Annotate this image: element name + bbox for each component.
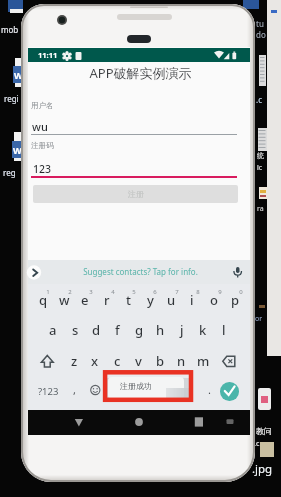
staticText: k: [199, 321, 207, 339]
staticText: 8: [196, 288, 200, 296]
staticText: u: [167, 291, 176, 309]
button[interactable]: k: [192, 316, 214, 344]
button[interactable]: t: [117, 286, 139, 314]
staticText: b: [156, 352, 165, 370]
button[interactable]: o: [203, 286, 225, 314]
button[interactable]: f: [106, 316, 128, 344]
button[interactable]: l: [213, 316, 235, 344]
staticText: ,: [73, 382, 76, 397]
button[interactable]: w: [53, 286, 75, 314]
staticText: 7: [175, 288, 179, 296]
staticText: y: [147, 291, 154, 309]
button[interactable]: u: [160, 286, 182, 314]
staticText: 0: [239, 288, 243, 296]
staticText: r: [104, 291, 110, 309]
staticText: 用户名: [31, 101, 54, 110]
staticText: tu: [256, 18, 264, 29]
button[interactable]: d: [85, 316, 107, 344]
staticText: .: [208, 382, 211, 397]
staticText: 注册成功: [120, 381, 152, 391]
button[interactable]: [217, 349, 242, 374]
button[interactable]: [220, 382, 239, 401]
staticText: lc: [257, 163, 263, 173]
staticText: 统: [257, 151, 264, 160]
button[interactable]: [31, 161, 237, 177]
button[interactable]: a: [42, 316, 64, 344]
staticText: o: [210, 291, 218, 309]
button[interactable]: y: [139, 286, 161, 314]
button[interactable]: z: [63, 347, 85, 375]
staticText: APP破解实例演示: [89, 64, 192, 82]
button[interactable]: v: [127, 347, 149, 375]
button[interactable]: p: [224, 286, 246, 314]
button[interactable]: [31, 118, 237, 134]
staticText: 注册码: [31, 141, 54, 150]
staticText: 1: [46, 288, 50, 296]
staticText: d: [92, 321, 101, 339]
button[interactable]: [69, 413, 89, 432]
staticText: regi: [4, 93, 19, 104]
staticText: w: [59, 291, 70, 309]
staticText: Suggest contacts? Tap for info.: [83, 266, 198, 277]
staticText: 注册: [128, 189, 144, 199]
staticText: .jpg: [252, 461, 273, 477]
button[interactable]: g: [128, 316, 150, 344]
staticText: e: [81, 291, 89, 309]
button[interactable]: n: [170, 347, 192, 375]
staticText: q: [39, 291, 48, 309]
staticText: c: [114, 352, 121, 370]
staticText: mob: [1, 24, 19, 35]
staticText: n: [177, 352, 186, 370]
staticText: z: [71, 352, 78, 370]
button[interactable]: [129, 413, 149, 432]
staticText: g: [135, 321, 144, 339]
staticText: 123: [33, 162, 52, 176]
staticText: ra: [257, 204, 264, 214]
staticText: ?123: [38, 385, 59, 398]
button[interactable]: [87, 382, 104, 399]
button[interactable]: q: [32, 286, 54, 314]
button[interactable]: i: [181, 286, 203, 314]
button[interactable]: x: [84, 347, 106, 375]
button[interactable]: r: [96, 286, 118, 314]
button[interactable]: m: [192, 347, 214, 375]
staticText: .c: [254, 439, 260, 449]
button[interactable]: s: [64, 316, 86, 344]
staticText: s: [72, 321, 79, 339]
button[interactable]: [35, 349, 60, 374]
staticText: 教问: [256, 426, 272, 436]
button[interactable]: [104, 378, 193, 401]
staticText: 11:11: [38, 50, 58, 60]
staticText: j: [180, 321, 184, 339]
button[interactable]: b: [149, 347, 171, 375]
staticText: f: [115, 321, 120, 339]
staticText: 2: [68, 288, 72, 296]
button[interactable]: ?123: [34, 378, 62, 405]
staticText: wu: [32, 119, 48, 134]
staticText: m: [197, 352, 210, 370]
staticText: h: [156, 321, 165, 339]
button[interactable]: h: [149, 316, 171, 344]
staticText: 5: [132, 288, 136, 296]
staticText: v: [135, 352, 142, 370]
staticText: do: [256, 29, 266, 40]
staticText: 6: [153, 288, 157, 296]
button[interactable]: e: [74, 286, 96, 314]
staticText: reg: [3, 167, 16, 178]
button[interactable]: [189, 413, 209, 432]
button[interactable]: j: [171, 316, 193, 344]
staticText: W: [13, 144, 22, 156]
staticText: 3: [89, 288, 93, 296]
staticText: p: [231, 291, 240, 309]
staticText: i: [190, 291, 194, 309]
staticText: 9: [218, 288, 222, 296]
button[interactable]: c: [106, 347, 128, 375]
staticText: x: [91, 352, 99, 370]
staticText: t: [126, 291, 131, 309]
staticText: .c: [256, 94, 262, 105]
staticText: l: [222, 321, 226, 339]
staticText: a: [49, 321, 57, 339]
button[interactable]: [28, 260, 250, 284]
staticText: 4: [111, 288, 115, 296]
